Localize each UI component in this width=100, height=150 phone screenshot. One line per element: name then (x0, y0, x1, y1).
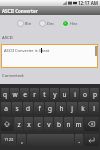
button[interactable]: Bin (17, 19, 32, 28)
button[interactable]: e (20, 88, 29, 100)
staticText: l (93, 104, 95, 113)
staticText: , (21, 136, 23, 145)
button[interactable]: z (14, 117, 23, 131)
staticText: t (43, 90, 46, 99)
staticText: o (83, 90, 87, 99)
staticText: w (12, 90, 18, 99)
staticText: i (74, 90, 76, 99)
staticText: v (47, 120, 51, 129)
staticText: h (59, 104, 64, 113)
button[interactable]: i (70, 88, 79, 100)
button[interactable]: ?123 (1, 134, 16, 146)
staticText: Converted: (2, 72, 25, 78)
staticText: c (37, 120, 41, 129)
button[interactable]: Shift (1, 117, 13, 131)
staticText: b (57, 120, 61, 129)
staticText: Dec (47, 21, 55, 26)
button[interactable]: x (24, 117, 33, 131)
button[interactable]: q (1, 88, 9, 100)
button[interactable]: m (74, 117, 83, 131)
staticText: z (17, 120, 21, 129)
staticText: r (33, 90, 36, 99)
button[interactable]: r (30, 88, 39, 100)
staticText: e (23, 90, 27, 99)
button[interactable]: f (34, 102, 44, 114)
staticText: ASCII Converter (2, 8, 38, 14)
button[interactable]: ASCII Converter is Great (2, 45, 97, 67)
staticText: Bin (25, 21, 32, 26)
button[interactable]: g (45, 102, 55, 114)
button[interactable]: n (64, 117, 73, 131)
staticText: u (62, 90, 67, 99)
button[interactable]: j (67, 102, 77, 114)
staticText: k (81, 104, 85, 113)
staticText: 12:17 AM (78, 0, 99, 6)
staticText: d (26, 104, 30, 113)
staticText: q (3, 90, 7, 99)
button[interactable]: Dec (39, 19, 55, 28)
button[interactable]: Enter (84, 134, 99, 146)
button[interactable]: o (80, 88, 89, 100)
button[interactable]: Delete (84, 117, 99, 131)
staticText: x (27, 120, 31, 129)
button[interactable] (27, 134, 74, 146)
button[interactable]: v (44, 117, 53, 131)
staticText: y (53, 90, 57, 99)
staticText: a (4, 104, 8, 113)
staticText: j (71, 104, 73, 113)
staticText: Hex (70, 21, 78, 26)
staticText: m (75, 120, 82, 129)
button[interactable]: h (56, 102, 66, 114)
staticText: f (38, 104, 41, 113)
staticText: n (66, 120, 71, 129)
staticText: ?123 (4, 137, 14, 143)
staticText: g (48, 104, 52, 113)
button[interactable]: u (60, 88, 69, 100)
button[interactable]: c (34, 117, 43, 131)
button[interactable]: . (75, 134, 83, 146)
button[interactable]: b (54, 117, 63, 131)
button[interactable]: d (23, 102, 33, 114)
button[interactable]: t (40, 88, 49, 100)
staticText: . (78, 136, 80, 145)
staticText: s (15, 104, 19, 113)
button[interactable]: , (17, 134, 26, 146)
button[interactable]: y (50, 88, 59, 100)
button[interactable]: Hex (62, 19, 78, 28)
button[interactable]: k (78, 102, 88, 114)
button[interactable]: a (1, 102, 11, 114)
button[interactable]: l (89, 102, 99, 114)
staticText: ASCII (2, 34, 13, 40)
button[interactable]: s (12, 102, 22, 114)
button[interactable]: w (10, 88, 19, 100)
staticText: ASCII Converter is Great (4, 48, 50, 53)
staticText: p (93, 90, 97, 99)
button[interactable]: p (90, 88, 99, 100)
